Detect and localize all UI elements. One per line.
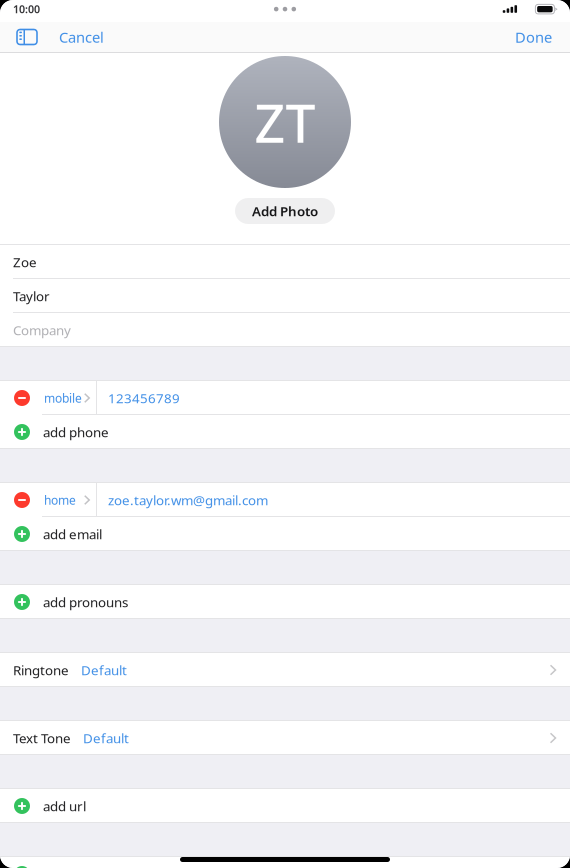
staticText: Ringtone (13, 661, 69, 679)
staticText: zoe.taylor.wm@gmail.com (108, 491, 268, 509)
button[interactable]: add address (0, 857, 570, 868)
staticText: Default (81, 661, 127, 679)
staticText: Company (13, 321, 71, 339)
button[interactable]: Add Photo (235, 198, 335, 224)
staticText: add url (43, 797, 86, 815)
button[interactable]: add phone (0, 415, 570, 449)
staticText: 123456789 (108, 389, 180, 407)
staticText: Zoe (13, 253, 37, 271)
staticText: Add Photo (252, 202, 318, 220)
staticText: add pronouns (43, 593, 128, 611)
staticText: Taylor (13, 287, 50, 305)
button[interactable]: add pronouns (0, 585, 570, 619)
button[interactable]: add url (0, 789, 570, 823)
staticText: Default (83, 729, 129, 747)
staticText: Done (515, 27, 552, 47)
button[interactable]: Text Tone (0, 721, 570, 755)
staticText: mobile (44, 390, 82, 406)
button[interactable]: add email (0, 517, 570, 551)
staticText: add email (43, 525, 102, 543)
button[interactable]: Cancel (49, 22, 116, 52)
staticText: 10:00 (13, 2, 40, 16)
staticText: add phone (43, 423, 109, 441)
button[interactable]: Done (503, 22, 570, 52)
button[interactable]: Ringtone (0, 653, 570, 687)
button[interactable]: Show sidebar (0, 22, 49, 52)
staticText: Text Tone (13, 729, 71, 747)
staticText: home (44, 492, 76, 508)
button[interactable]: mobile (0, 381, 570, 415)
staticText: Cancel (59, 27, 104, 47)
button[interactable]: home (0, 483, 570, 517)
staticText: ZT (254, 87, 315, 157)
